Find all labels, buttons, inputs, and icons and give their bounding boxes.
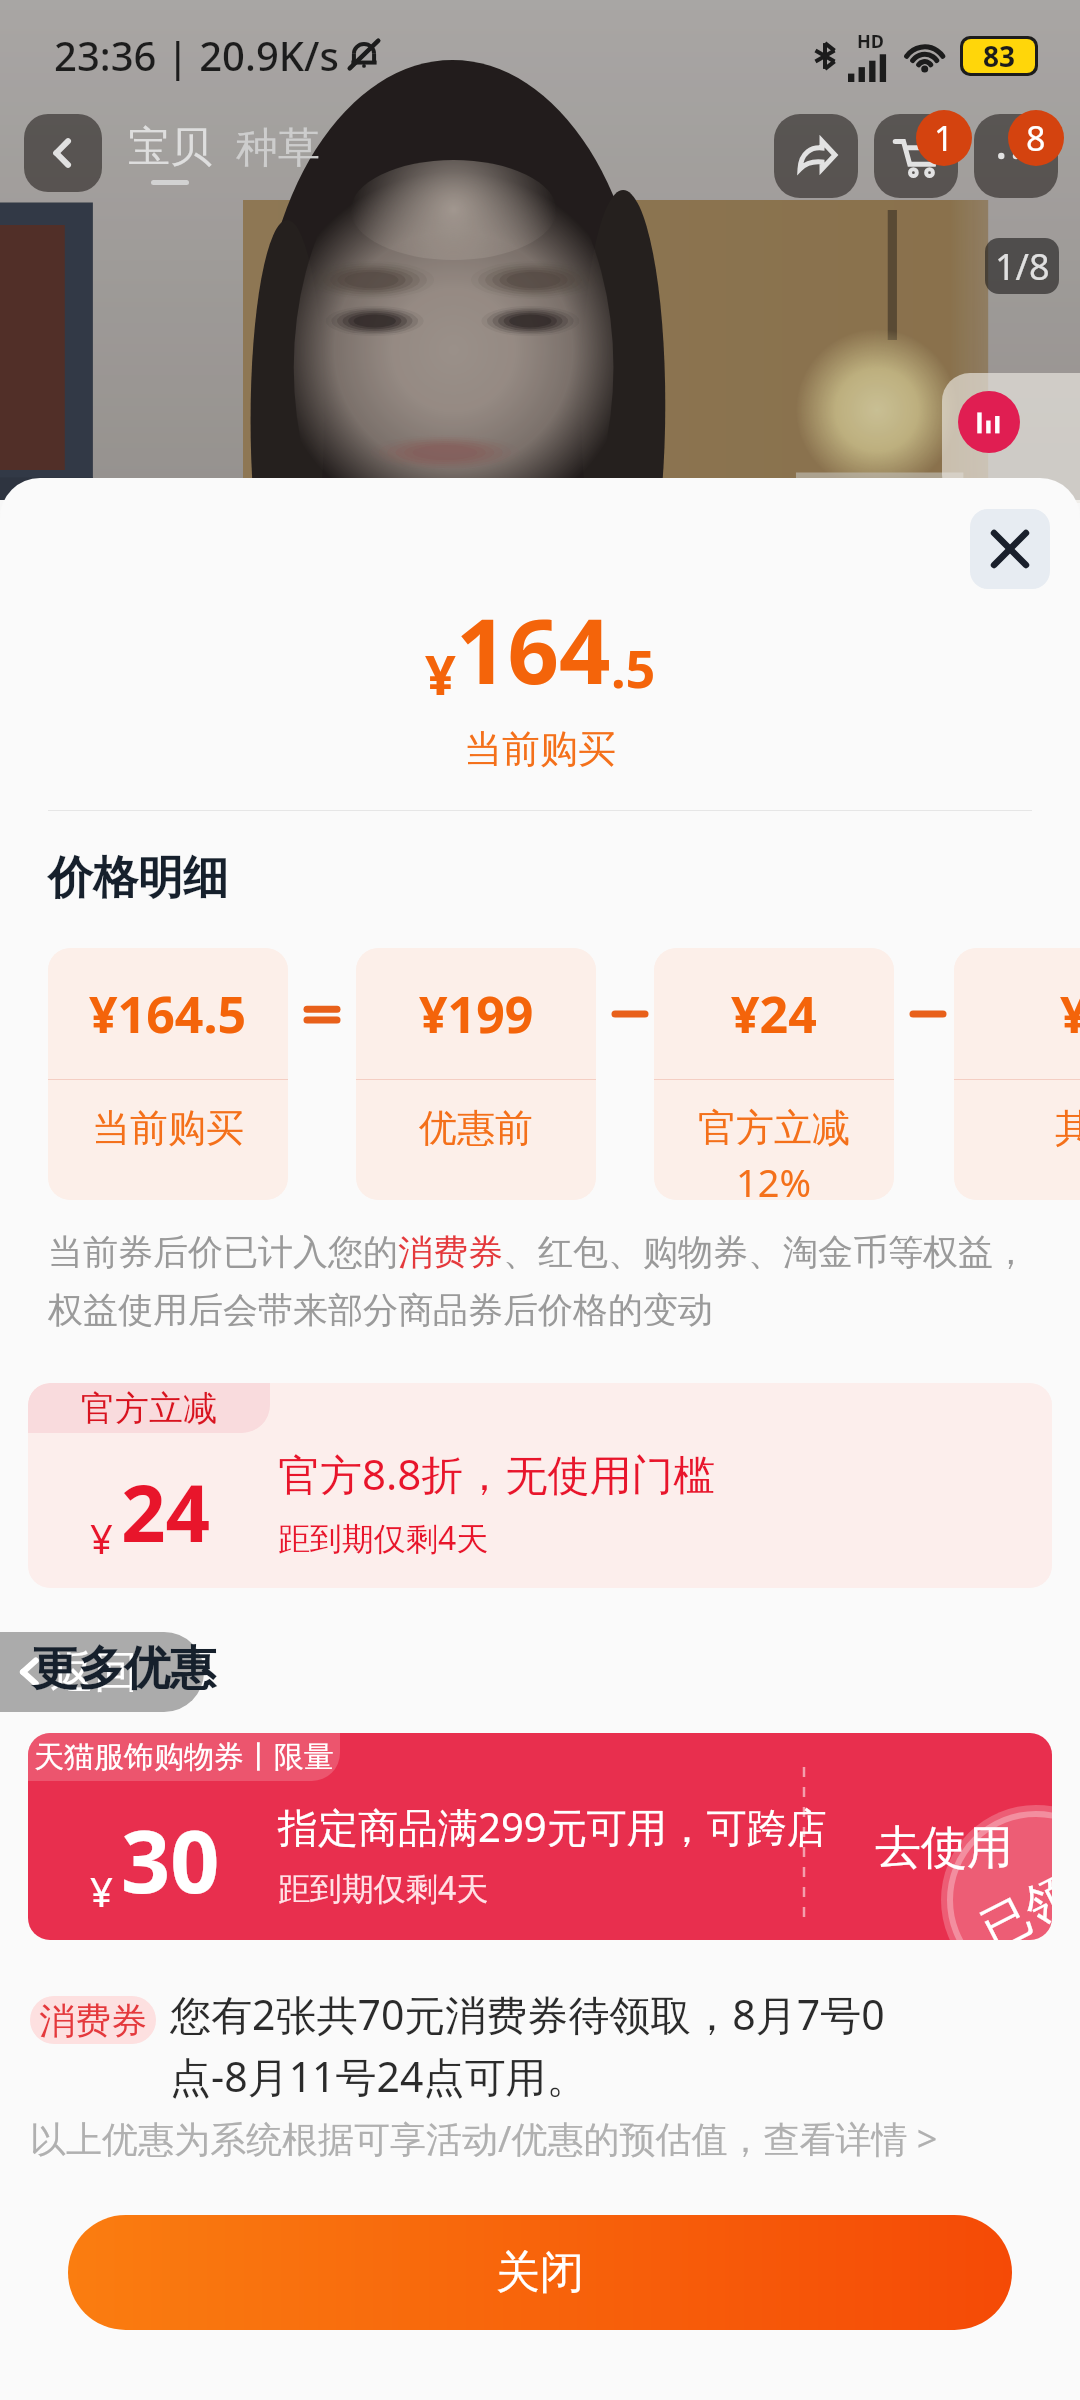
staticText: 返回 — [50, 1645, 138, 1700]
button[interactable]: ¥ — [954, 948, 1080, 1200]
staticText: 官方立减 — [698, 1104, 850, 1152]
staticText: 当前购买 — [464, 725, 616, 773]
staticText: 24 — [121, 1459, 211, 1565]
staticText: 关闭 — [496, 2245, 584, 2300]
staticText: 权益使用后会带来部分商品券后价格的变动 — [48, 1288, 713, 1332]
button[interactable]: Back — [0, 1632, 204, 1712]
staticText: 官方立减 — [81, 1387, 217, 1430]
staticText: ¥ — [90, 1511, 113, 1565]
button[interactable]: Share — [774, 114, 858, 198]
staticText: 164 — [456, 588, 611, 711]
staticText: 优惠前 — [419, 1104, 533, 1152]
staticText: 天猫服饰购物券丨限量 — [34, 1738, 334, 1776]
staticText: 23:36 | 20.9K/s — [54, 28, 339, 82]
staticText: 种草 — [236, 122, 320, 175]
staticText: ¥ — [425, 637, 456, 711]
staticText: 距到期仅剩4天 — [278, 1516, 489, 1560]
staticText: 1/8 — [995, 242, 1050, 291]
staticText: 当前购买 — [92, 1104, 244, 1152]
button[interactable]: Live — [942, 373, 1080, 503]
staticText: 以上优惠为系统根据可享活动/优惠的预估值，查看详情 > — [30, 2114, 938, 2163]
staticText: 消费券 — [398, 1230, 503, 1274]
staticText: 1 — [934, 115, 954, 161]
staticText: ¥199 — [419, 980, 534, 1048]
button[interactable]: 官方立减 — [28, 1383, 1052, 1588]
staticText: .5 — [611, 632, 656, 703]
staticText: ¥ — [90, 1864, 113, 1918]
button[interactable]: 天猫服饰购物券丨限量 — [28, 1733, 1052, 1940]
staticText: 其 — [1055, 1104, 1080, 1152]
button[interactable]: Close — [970, 509, 1050, 589]
staticText: ¥164.5 — [89, 980, 247, 1048]
staticText: 当前券后价已计入您的 — [48, 1230, 398, 1274]
staticText: 8 — [1026, 115, 1046, 161]
button[interactable]: Back — [24, 114, 102, 192]
button[interactable]: ¥164.5 — [48, 948, 288, 1200]
staticText: 消费券 — [39, 1998, 147, 2043]
button[interactable]: ¥24 — [654, 948, 894, 1200]
staticText: 指定商品满299元可用，可跨店 — [278, 1799, 827, 1854]
staticText: 点-8月11号24点可用。 — [170, 2048, 588, 2104]
staticText: 价格明细 — [48, 850, 228, 907]
button[interactable]: ¥199 — [356, 948, 596, 1200]
staticText: 12% — [736, 1156, 812, 1200]
staticText: 30 — [121, 1801, 220, 1918]
staticText: 您有2张共70元消费券待领取，8月7号0 — [170, 1986, 885, 2042]
staticText: 距到期仅剩4天 — [278, 1866, 489, 1910]
staticText: ¥24 — [731, 980, 817, 1048]
staticText: 更多优惠 — [32, 1640, 216, 1698]
staticText: HD — [857, 29, 884, 54]
staticText: ¥ — [1060, 980, 1080, 1048]
staticText: 已领 — [972, 1863, 1052, 1940]
staticText: 去使用 — [875, 1819, 1013, 1877]
staticText: 83 — [983, 37, 1016, 75]
staticText: 官方8.8折，无使用门槛 — [278, 1445, 716, 1502]
staticText: 宝贝 — [128, 121, 212, 174]
staticText: 、红包、购物券、淘金币等权益， — [503, 1230, 1028, 1274]
button[interactable]: More — [974, 114, 1058, 198]
button[interactable]: 关闭 — [68, 2215, 1012, 2330]
button[interactable]: Cart — [874, 114, 958, 198]
